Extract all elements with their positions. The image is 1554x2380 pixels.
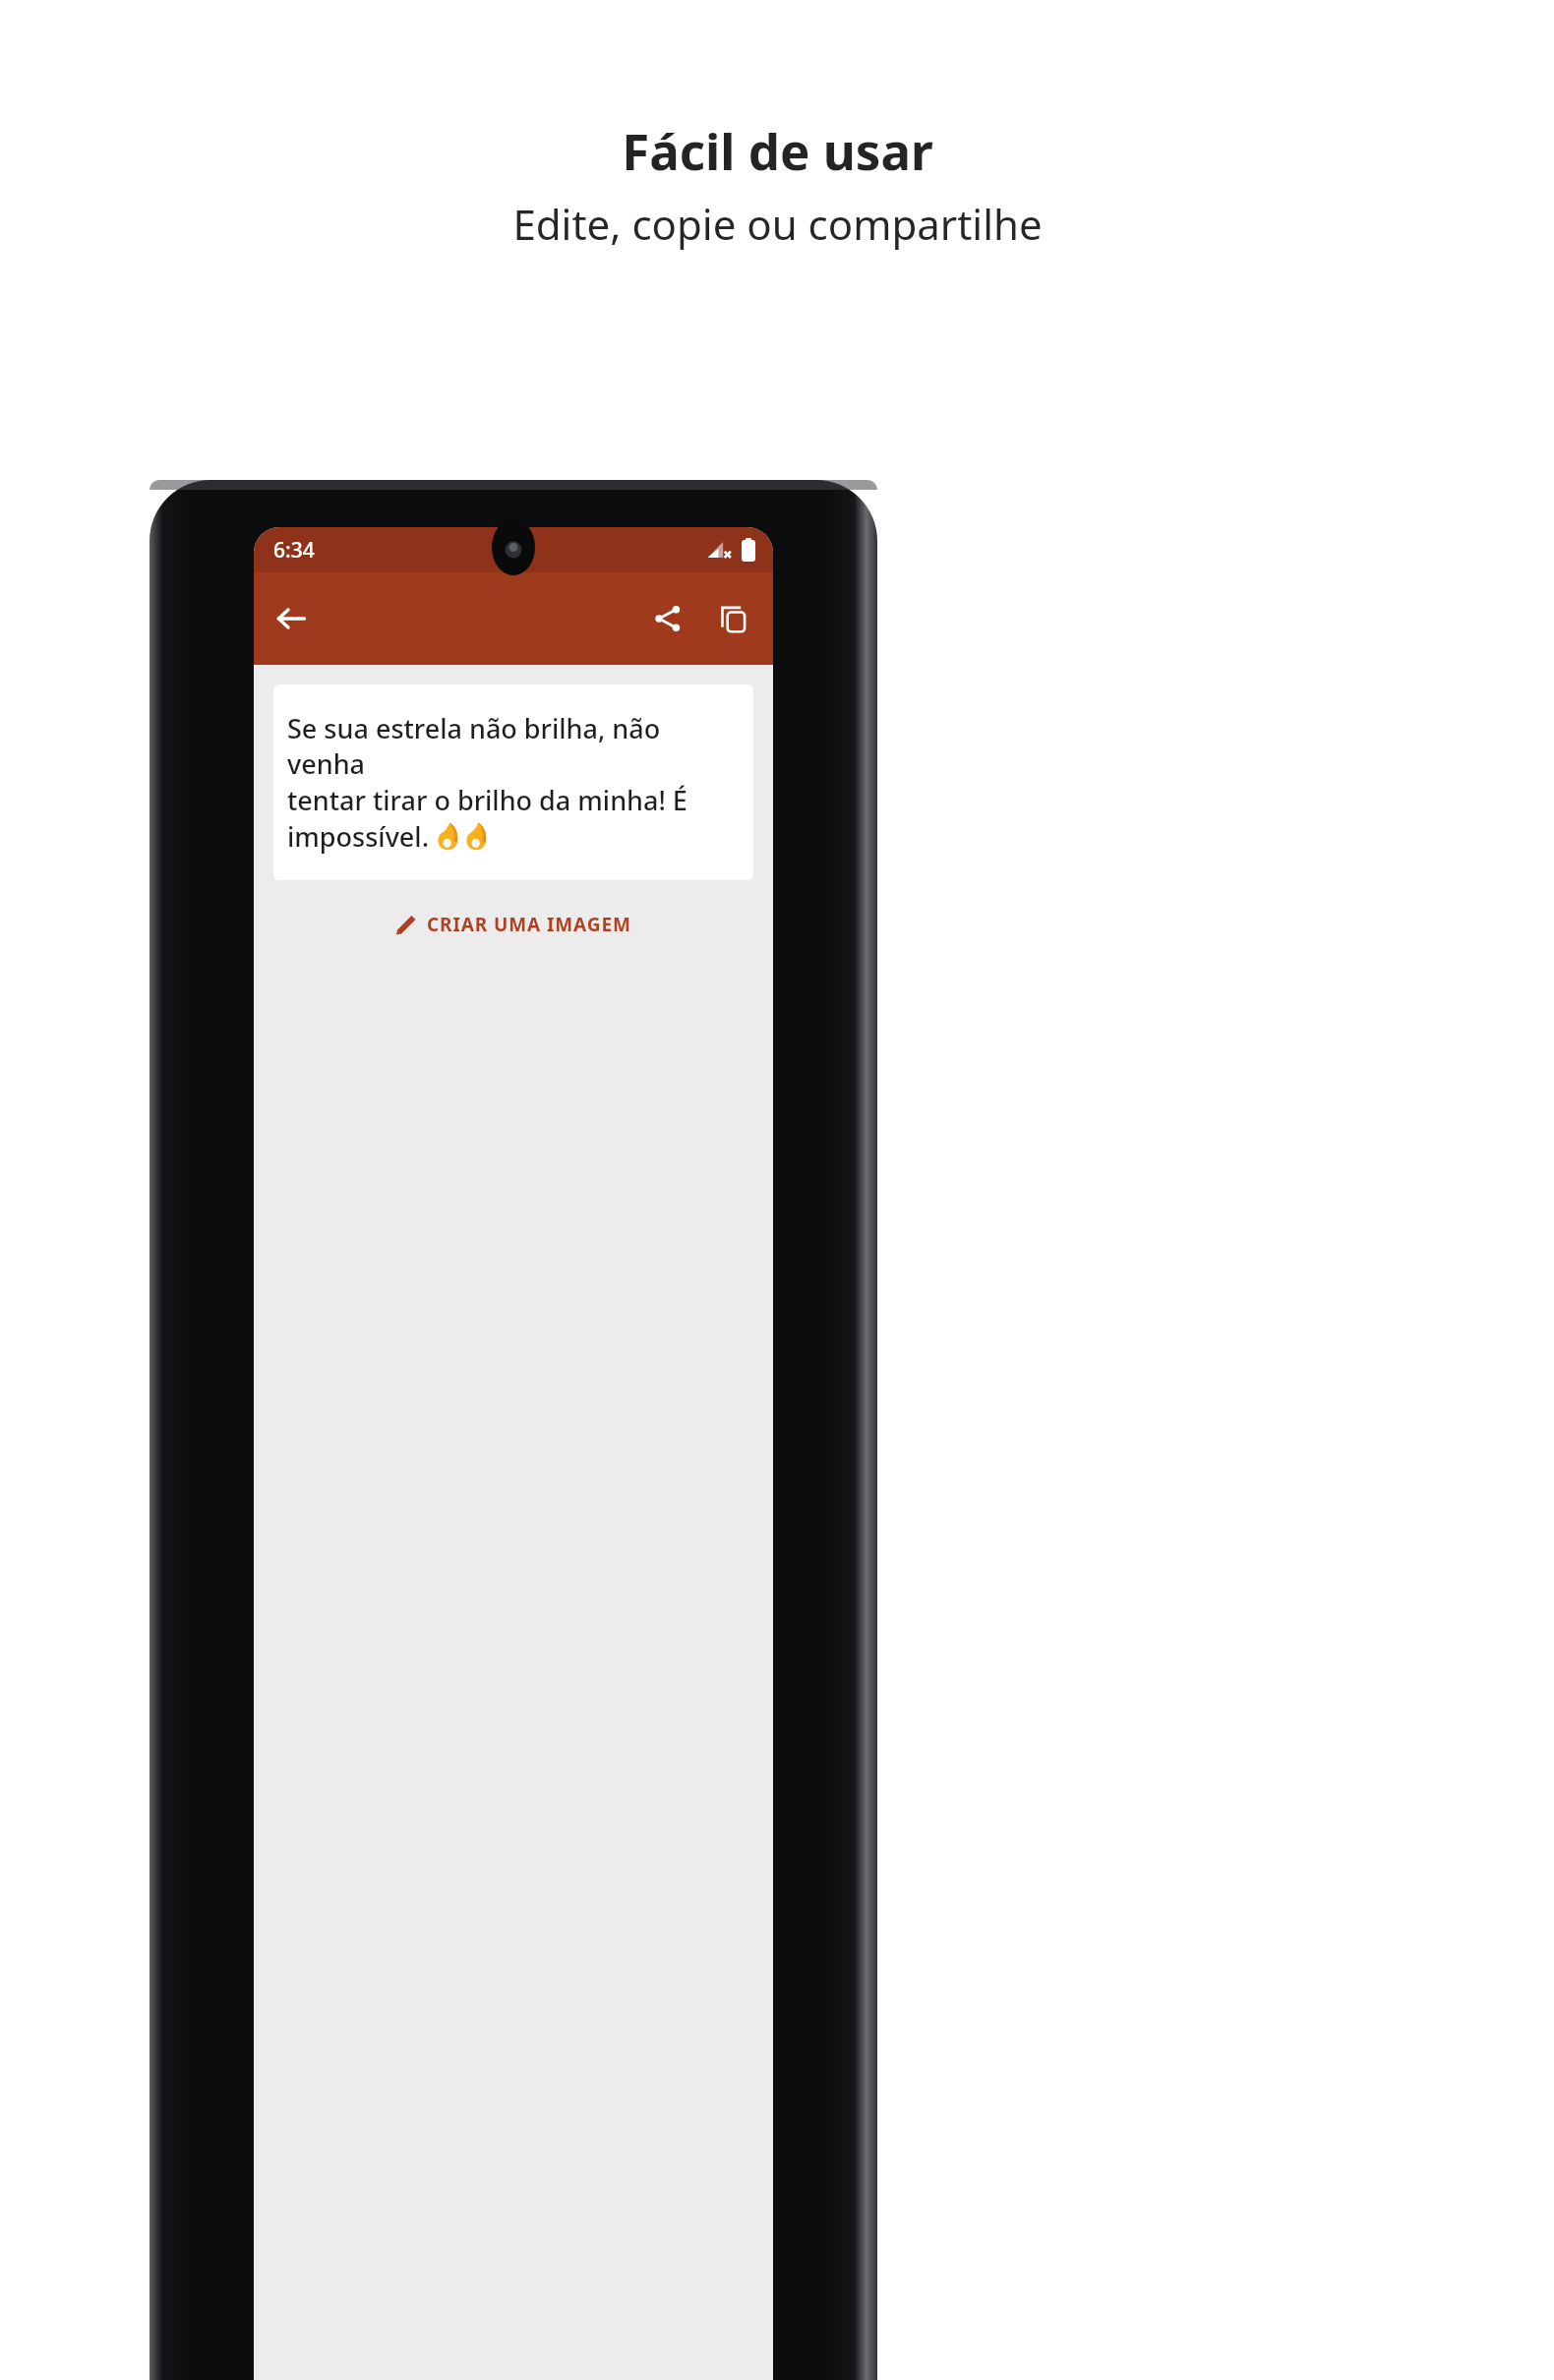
staticText: tentar tirar o brilho da minha! É (287, 782, 687, 818)
button[interactable]: CRIAR UMA IMAGEM (380, 902, 647, 947)
button[interactable]: Share (637, 588, 698, 649)
staticText: Se sua estrela não brilha, não venha (287, 710, 740, 782)
staticText: 6:34 (273, 536, 315, 565)
staticText: Fácil de usar (622, 116, 933, 184)
button[interactable]: Back (260, 587, 323, 650)
button[interactable]: Copy (702, 588, 763, 649)
staticText: Edite, copie ou compartilhe (512, 196, 1043, 252)
staticText: impossível. (287, 818, 437, 855)
staticText: CRIAR UMA IMAGEM (427, 912, 631, 937)
button[interactable]: Se sua estrela não brilha, não venha (273, 684, 753, 880)
